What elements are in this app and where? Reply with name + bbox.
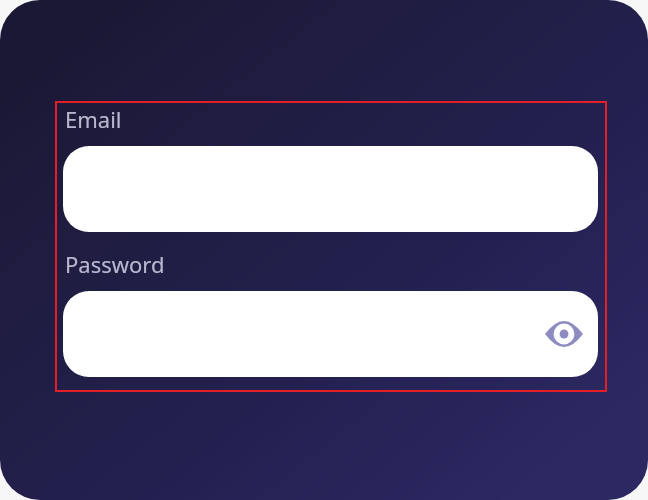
button[interactable]: Show password [540,310,588,358]
staticText: Password [65,249,165,279]
button[interactable]: Show password [63,291,598,377]
button[interactable] [63,146,598,232]
staticText: Email [65,104,122,134]
